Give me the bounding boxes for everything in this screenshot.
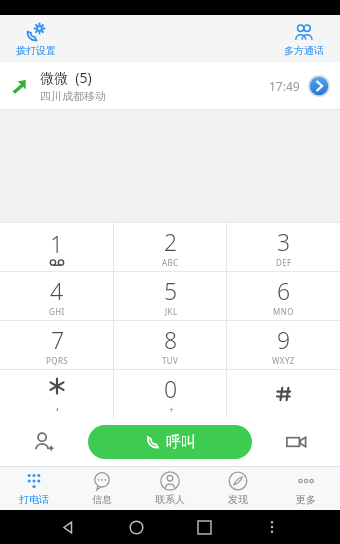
- staticText: 8: [164, 324, 178, 355]
- button[interactable]: Back: [56, 515, 80, 539]
- button[interactable]: 8: [114, 321, 227, 369]
- staticText: 1: [50, 228, 64, 259]
- staticText: 信息: [92, 493, 112, 506]
- staticText: 联系人: [155, 493, 185, 506]
- button[interactable]: 7: [0, 321, 114, 369]
- staticText: 更多: [296, 493, 316, 506]
- button[interactable]: 5: [114, 272, 227, 320]
- button[interactable]: 3: [227, 223, 340, 271]
- staticText: 4: [50, 275, 64, 306]
- staticText: ABC: [162, 257, 179, 268]
- button[interactable]: 2: [114, 223, 227, 271]
- button[interactable]: 更多: [272, 467, 340, 510]
- button[interactable]: Add contact: [0, 418, 88, 466]
- staticText: 多方通话: [284, 44, 324, 57]
- staticText: 3: [277, 226, 291, 257]
- button[interactable]: 多方通话: [278, 19, 330, 59]
- button[interactable]: Recents: [192, 515, 216, 539]
- staticText: 0: [164, 373, 178, 404]
- button[interactable]: 打电话: [0, 467, 68, 510]
- staticText: DEF: [276, 257, 292, 268]
- staticText: 拨打设置: [16, 44, 56, 57]
- staticText: 呼叫: [166, 433, 196, 452]
- staticText: +: [169, 404, 174, 415]
- button[interactable]: [227, 370, 340, 418]
- staticText: TUV: [162, 355, 179, 366]
- staticText: 7: [51, 324, 65, 355]
- staticText: PQRS: [46, 355, 69, 366]
- staticText: 发现: [228, 493, 248, 506]
- button[interactable]: 拨打设置: [10, 19, 62, 59]
- staticText: 2: [164, 226, 178, 257]
- button[interactable]: 1: [0, 223, 114, 271]
- button[interactable]: 4: [0, 272, 114, 320]
- staticText: 5: [164, 275, 178, 306]
- staticText: 17:49: [269, 78, 300, 94]
- button[interactable]: 发现: [204, 467, 272, 510]
- staticText: 四川成都移动: [40, 89, 106, 103]
- button[interactable]: Call details: [308, 75, 330, 97]
- staticText: 6: [277, 275, 291, 306]
- staticText: 微微 (5): [40, 68, 92, 87]
- button[interactable]: ,: [0, 370, 114, 418]
- staticText: ,: [56, 398, 59, 413]
- button[interactable]: More options: [260, 515, 284, 539]
- button[interactable]: Video call: [252, 418, 340, 466]
- button[interactable]: Home: [124, 515, 148, 539]
- staticText: 9: [277, 324, 291, 355]
- staticText: MNO: [273, 306, 294, 317]
- button[interactable]: 9: [227, 321, 340, 369]
- button[interactable]: 6: [227, 272, 340, 320]
- button[interactable]: 联系人: [136, 467, 204, 510]
- staticText: 打电话: [19, 493, 49, 506]
- button[interactable]: 信息: [68, 467, 136, 510]
- staticText: WXYZ: [272, 355, 295, 366]
- staticText: JKL: [165, 306, 178, 317]
- button[interactable]: 呼叫: [88, 425, 252, 459]
- button[interactable]: 微微 (5): [0, 62, 340, 109]
- staticText: GHI: [49, 306, 65, 317]
- button[interactable]: 0: [114, 370, 227, 418]
